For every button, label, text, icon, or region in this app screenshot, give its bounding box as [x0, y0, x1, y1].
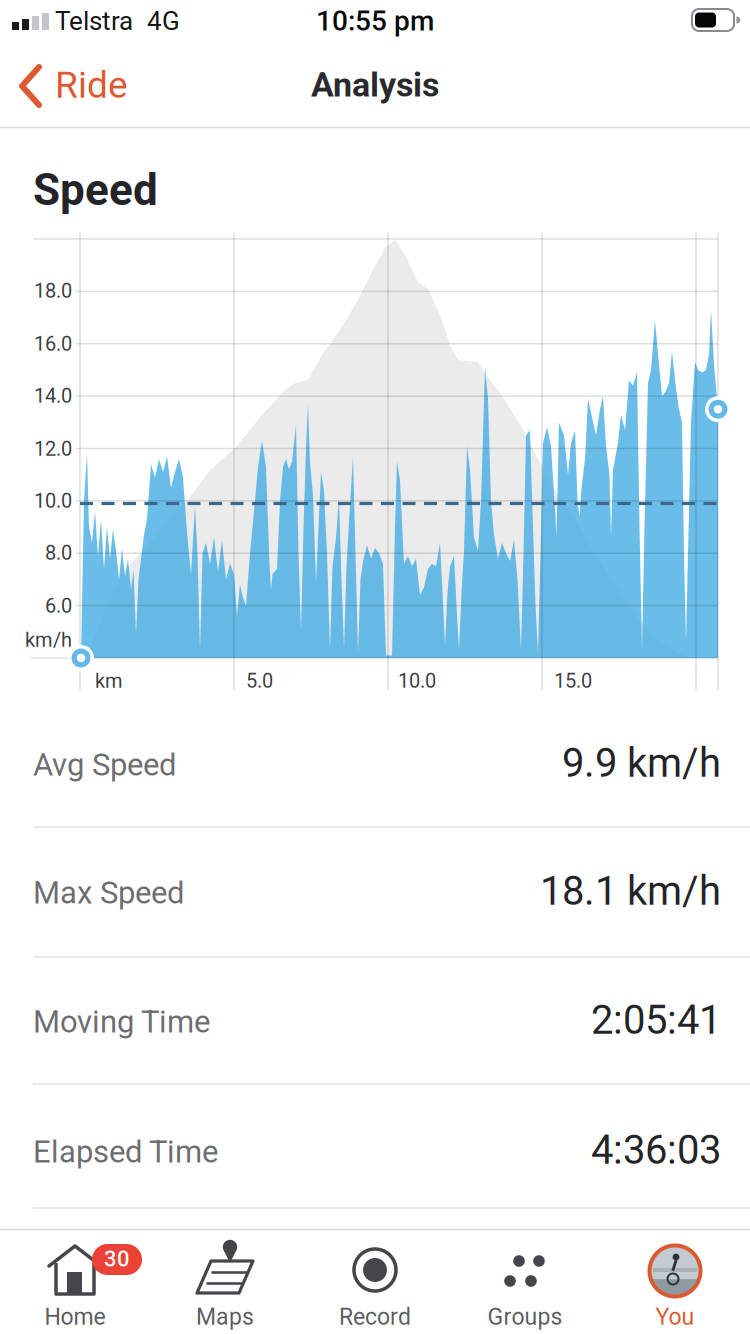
staticText: Speed: [33, 164, 158, 216]
staticText: 5.0: [246, 669, 273, 693]
staticText: 10.0: [34, 489, 72, 513]
staticText: 9.9 km/h: [562, 740, 721, 786]
staticText: 4:36:03: [591, 1127, 721, 1173]
staticText: 18.1 km/h: [540, 868, 721, 914]
staticText: Analysis: [311, 65, 439, 105]
staticText: Groups: [487, 1303, 562, 1330]
staticText: 16.0: [34, 332, 72, 356]
staticText: km/h: [25, 628, 72, 652]
staticText: km: [95, 669, 123, 693]
staticText: Home: [44, 1303, 105, 1330]
staticText: 15.0: [554, 669, 592, 693]
staticText: Record: [339, 1303, 411, 1330]
staticText: Telstra: [55, 6, 133, 36]
staticText: 10:55 pm: [316, 5, 434, 37]
staticText: Elapsed Time: [33, 1134, 218, 1170]
staticText: You: [655, 1303, 694, 1330]
staticText: 14.0: [34, 384, 72, 408]
staticText: Moving Time: [33, 1004, 210, 1040]
staticText: Ride: [55, 63, 128, 107]
staticText: 4G: [147, 6, 180, 36]
staticText: 2:05:41: [591, 997, 721, 1043]
staticText: 6.0: [45, 594, 72, 618]
staticText: 10.0: [398, 669, 436, 693]
staticText: Maps: [196, 1303, 254, 1330]
staticText: 12.0: [34, 437, 72, 461]
staticText: 30: [104, 1246, 130, 1272]
staticText: 18.0: [34, 279, 72, 303]
staticText: Avg Speed: [33, 747, 176, 783]
staticText: Max Speed: [33, 875, 184, 911]
staticText: 8.0: [45, 541, 72, 565]
